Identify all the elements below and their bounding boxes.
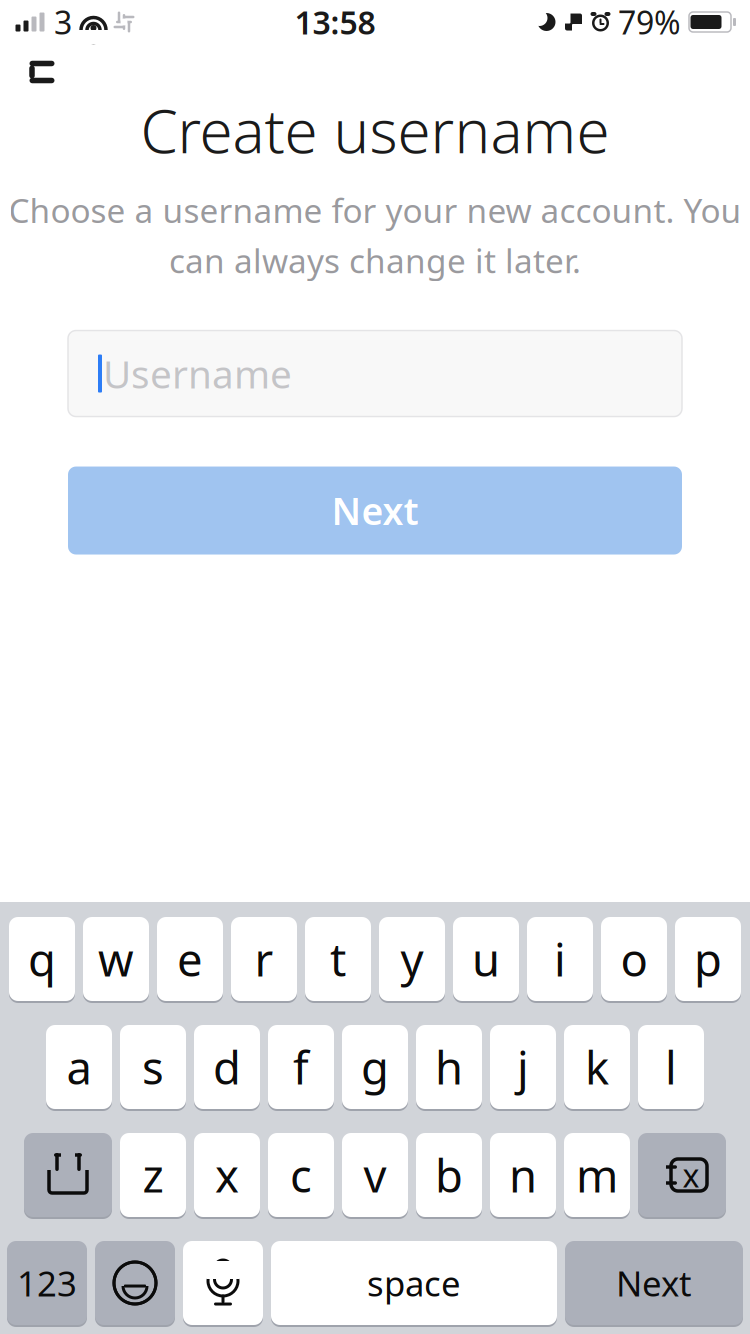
button[interactable]: r xyxy=(231,915,297,1003)
button[interactable]: Back xyxy=(12,45,72,99)
button[interactable]: k xyxy=(564,1023,630,1111)
button[interactable]: l xyxy=(638,1023,704,1111)
staticText: y xyxy=(400,929,423,989)
staticText: 13:58 xyxy=(294,1,375,43)
staticText: w xyxy=(98,929,134,989)
staticText: Create username xyxy=(140,90,609,170)
button[interactable]: d xyxy=(194,1023,260,1111)
staticText: Choose a username for your new account. … xyxy=(8,188,741,232)
button[interactable]: f xyxy=(268,1023,334,1111)
button[interactable]: y xyxy=(379,915,445,1003)
button[interactable]: t xyxy=(305,915,371,1003)
staticText: 123 xyxy=(17,1260,77,1306)
button[interactable]: 123 xyxy=(7,1239,87,1327)
staticText: c xyxy=(290,1145,312,1205)
staticText: a xyxy=(66,1037,91,1097)
staticText: p xyxy=(694,929,722,989)
staticText: j xyxy=(517,1037,529,1097)
staticText: t xyxy=(330,929,346,989)
button[interactable]: s xyxy=(120,1023,186,1111)
button[interactable]: j xyxy=(490,1023,556,1111)
staticText: x xyxy=(682,1154,699,1196)
staticText: can always change it later. xyxy=(169,238,581,283)
button[interactable]: p xyxy=(675,915,741,1003)
button[interactable]: n xyxy=(490,1131,556,1219)
staticText: m xyxy=(576,1145,618,1205)
staticText: Next xyxy=(616,1260,692,1306)
staticText: g xyxy=(361,1037,389,1097)
staticText: z xyxy=(142,1145,163,1205)
button[interactable]: a xyxy=(46,1023,112,1111)
staticText: r xyxy=(254,929,273,989)
button[interactable]: g xyxy=(342,1023,408,1111)
button[interactable]: w xyxy=(83,915,149,1003)
staticText: i xyxy=(554,929,566,989)
staticText: v xyxy=(363,1145,386,1205)
button[interactable]: Shift xyxy=(24,1131,112,1219)
button[interactable]: Emoji xyxy=(95,1239,175,1327)
staticText: h xyxy=(435,1037,463,1097)
button[interactable]: e xyxy=(157,915,223,1003)
staticText: e xyxy=(177,929,203,989)
button[interactable]: i xyxy=(527,915,593,1003)
staticText: q xyxy=(28,929,56,989)
staticText: 79% xyxy=(618,1,681,43)
button[interactable]: b xyxy=(416,1131,482,1219)
button[interactable]: h xyxy=(416,1023,482,1111)
button[interactable]: space xyxy=(271,1239,557,1327)
button[interactable]: c xyxy=(268,1131,334,1219)
staticText: space xyxy=(367,1260,461,1306)
staticText: n xyxy=(509,1145,537,1205)
button[interactable]: u xyxy=(453,915,519,1003)
staticText: Username xyxy=(103,348,292,399)
staticText: s xyxy=(142,1037,164,1097)
staticText: b xyxy=(435,1145,463,1205)
button[interactable]: z xyxy=(120,1131,186,1219)
button[interactable]: m xyxy=(564,1131,630,1219)
staticText: u xyxy=(472,929,500,989)
staticText: f xyxy=(293,1037,309,1097)
button[interactable]: x xyxy=(194,1131,260,1219)
button[interactable]: Next xyxy=(68,466,682,554)
button[interactable]: Dictation xyxy=(183,1239,263,1327)
button[interactable]: Next xyxy=(565,1239,743,1327)
button[interactable]: v xyxy=(342,1131,408,1219)
button[interactable]: o xyxy=(601,915,667,1003)
staticText: o xyxy=(620,929,647,989)
staticText: 3 xyxy=(54,1,72,43)
staticText: Next xyxy=(331,486,418,535)
staticText: d xyxy=(213,1037,241,1097)
button[interactable]: q xyxy=(9,915,75,1003)
staticText: k xyxy=(585,1037,609,1097)
button[interactable]: Delete xyxy=(638,1131,726,1219)
staticText: l xyxy=(665,1037,677,1097)
staticText: x xyxy=(215,1145,239,1205)
